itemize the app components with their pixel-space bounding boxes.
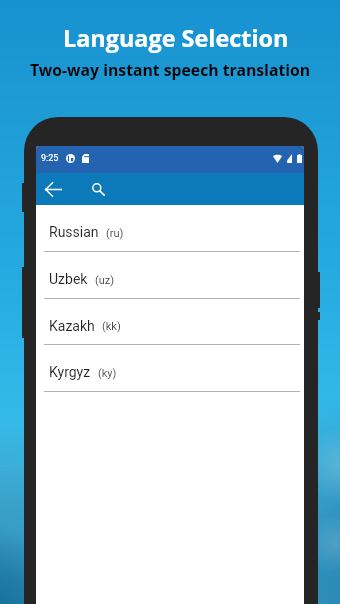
staticText: Two-way instant speech translation xyxy=(30,59,311,80)
button[interactable]: Kyrgyz xyxy=(36,345,304,391)
staticText: Uzbek xyxy=(49,271,88,287)
staticText: Kazakh xyxy=(49,318,95,334)
button[interactable]: Uzbek xyxy=(36,252,304,298)
staticText: Kyrgyz xyxy=(49,364,91,380)
button[interactable]: Search xyxy=(85,176,111,202)
staticText: (uz) xyxy=(95,274,115,287)
staticText: Language Selection xyxy=(63,22,289,54)
staticText: (ky) xyxy=(98,367,117,380)
button[interactable]: Kazakh xyxy=(36,299,304,344)
staticText: Russian xyxy=(49,224,99,240)
button[interactable]: Russian xyxy=(36,205,304,251)
button[interactable]: Back xyxy=(40,176,66,202)
staticText: (kk) xyxy=(102,320,121,333)
staticText: (ru) xyxy=(106,227,124,240)
staticText: 9:25 xyxy=(41,153,59,164)
